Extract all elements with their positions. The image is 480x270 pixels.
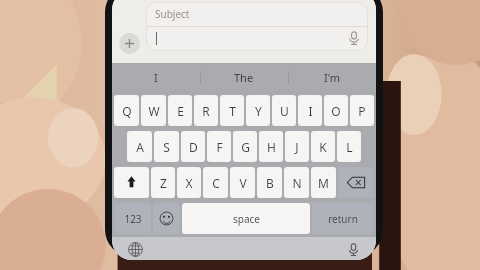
staticText: L <box>346 139 353 155</box>
staticText: O <box>331 103 341 119</box>
button[interactable]: Dictation <box>342 238 364 260</box>
button[interactable]: G <box>233 131 257 162</box>
staticText: N <box>292 175 302 191</box>
staticText: E <box>177 103 184 119</box>
staticText: B <box>266 175 274 191</box>
button[interactable]: R <box>194 95 218 126</box>
staticText: A <box>136 139 144 155</box>
button[interactable]: Add attachment <box>119 33 140 54</box>
button[interactable]: I <box>112 63 200 92</box>
button[interactable]: space <box>182 203 310 234</box>
staticText: return <box>328 212 358 226</box>
button[interactable]: Delete <box>338 167 374 198</box>
button[interactable]: Z <box>151 167 175 198</box>
staticText: space <box>233 212 260 226</box>
button[interactable]: Y <box>246 95 270 126</box>
staticText: G <box>241 139 250 155</box>
button[interactable]: W <box>141 95 166 126</box>
button[interactable]: X <box>177 167 201 198</box>
button[interactable]: N <box>284 167 309 198</box>
button[interactable]: P <box>350 95 374 126</box>
staticText: S <box>163 139 170 155</box>
button[interactable]: I <box>298 95 322 126</box>
staticText: I'm <box>324 70 341 85</box>
button[interactable]: Emoji <box>153 203 180 234</box>
staticText: Subject <box>155 7 190 21</box>
button[interactable]: return <box>312 203 374 234</box>
button[interactable]: J <box>285 131 309 162</box>
staticText: D <box>189 139 198 155</box>
button[interactable]: U <box>272 95 296 126</box>
button[interactable]: T <box>220 95 244 126</box>
button[interactable]: C <box>203 167 228 198</box>
button[interactable]: Change keyboard language <box>124 238 146 260</box>
button[interactable]: Q <box>114 95 139 126</box>
staticText: M <box>318 175 329 191</box>
staticText: C <box>212 175 220 191</box>
staticText: R <box>202 103 210 119</box>
staticText: T <box>229 103 236 119</box>
button[interactable]: Shift <box>114 167 149 198</box>
button[interactable]: Subject <box>146 2 368 51</box>
staticText: V <box>239 175 247 191</box>
staticText: Z <box>160 175 167 191</box>
staticText: U <box>280 103 289 119</box>
button[interactable]: B <box>257 167 282 198</box>
staticText: F <box>216 139 223 155</box>
button[interactable]: K <box>311 131 335 162</box>
button[interactable]: D <box>181 131 205 162</box>
staticText: P <box>358 103 366 119</box>
staticText: Y <box>255 103 262 119</box>
button[interactable]: L <box>337 131 361 162</box>
button[interactable]: E <box>168 95 192 126</box>
button[interactable]: O <box>324 95 348 126</box>
staticText: K <box>319 139 327 155</box>
staticText: Q <box>122 103 132 119</box>
staticText: W <box>148 103 160 119</box>
staticText: I <box>308 103 313 119</box>
button[interactable]: A <box>127 131 152 162</box>
button[interactable]: V <box>230 167 255 198</box>
button[interactable]: Dictate <box>346 30 362 46</box>
staticText: The <box>234 70 254 85</box>
staticText: I <box>154 70 158 85</box>
button[interactable]: S <box>154 131 179 162</box>
button[interactable]: 123 <box>114 203 151 234</box>
staticText: 123 <box>124 212 142 226</box>
button[interactable]: I'm <box>288 63 376 92</box>
button[interactable]: M <box>311 167 336 198</box>
staticText: H <box>267 139 276 155</box>
button[interactable]: The <box>200 63 288 92</box>
staticText: J <box>295 139 299 155</box>
button[interactable]: H <box>259 131 283 162</box>
staticText: X <box>185 175 193 191</box>
button[interactable]: F <box>207 131 231 162</box>
